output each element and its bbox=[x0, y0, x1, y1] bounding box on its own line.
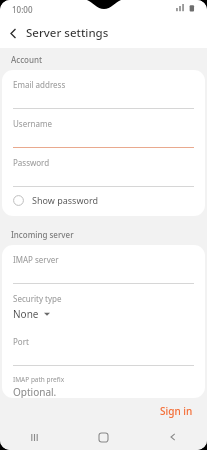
button[interactable]: IMAP server bbox=[2, 245, 205, 284]
button[interactable]: Port bbox=[2, 327, 205, 366]
button[interactable]: Password bbox=[2, 148, 205, 187]
staticText: Show password bbox=[32, 194, 98, 206]
staticText: Email address bbox=[13, 79, 66, 90]
staticText: IMAP server bbox=[13, 254, 59, 265]
staticText: Optional. bbox=[13, 385, 57, 398]
staticText: 10:00 bbox=[12, 4, 33, 15]
button[interactable]: Email address bbox=[2, 70, 205, 109]
staticText: Port bbox=[13, 336, 29, 347]
staticText: Password bbox=[13, 157, 50, 168]
button[interactable]: IMAP path prefix bbox=[2, 366, 205, 398]
button[interactable]: Home bbox=[69, 424, 138, 450]
button[interactable]: Back bbox=[0, 20, 26, 46]
button[interactable]: Sign in bbox=[146, 400, 207, 422]
button[interactable]: Security type bbox=[2, 284, 205, 327]
staticText: IMAP path prefix bbox=[13, 375, 65, 384]
staticText: Account bbox=[11, 54, 43, 65]
button[interactable]: Back bbox=[138, 424, 207, 450]
button[interactable]: Recents bbox=[0, 424, 69, 450]
staticText: Server settings bbox=[26, 25, 109, 41]
staticText: Sign in bbox=[160, 404, 193, 418]
staticText: Username bbox=[13, 118, 52, 129]
staticText: Security type bbox=[13, 293, 62, 304]
staticText: Incoming server bbox=[11, 229, 74, 240]
button[interactable]: Show password bbox=[2, 187, 205, 213]
staticText: None bbox=[13, 307, 39, 321]
button[interactable]: Username bbox=[2, 109, 205, 148]
